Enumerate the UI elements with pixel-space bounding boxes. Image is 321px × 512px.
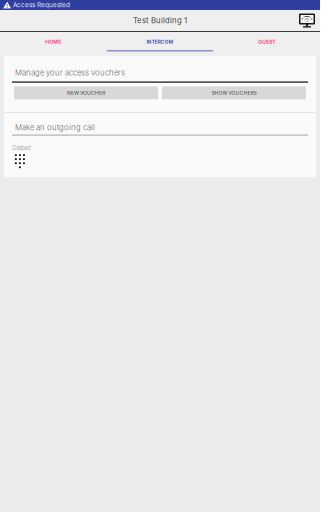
button[interactable]: SHOW VOUCHERS [162, 86, 306, 99]
staticText: GUEST [258, 39, 275, 45]
staticText: Test Building 1 [133, 16, 187, 25]
button[interactable]: GUEST [213, 32, 320, 50]
staticText: HOME [45, 39, 61, 45]
staticText: INTERCOM [146, 39, 173, 45]
staticText: NEW VOUCHER [67, 90, 105, 96]
button[interactable]: Cast screen [299, 13, 315, 27]
staticText: SHOW VOUCHERS [211, 90, 256, 96]
staticText: Make an outgoing call [15, 123, 95, 132]
button[interactable]: Dialpad [4, 136, 36, 172]
button[interactable]: INTERCOM [107, 32, 213, 50]
button[interactable]: NEW VOUCHER [14, 86, 158, 99]
staticText: Dialpad [12, 145, 30, 151]
button[interactable]: HOME [0, 32, 107, 50]
staticText: Manage your access vouchers [15, 68, 125, 77]
staticText: Access Requested [13, 1, 70, 9]
